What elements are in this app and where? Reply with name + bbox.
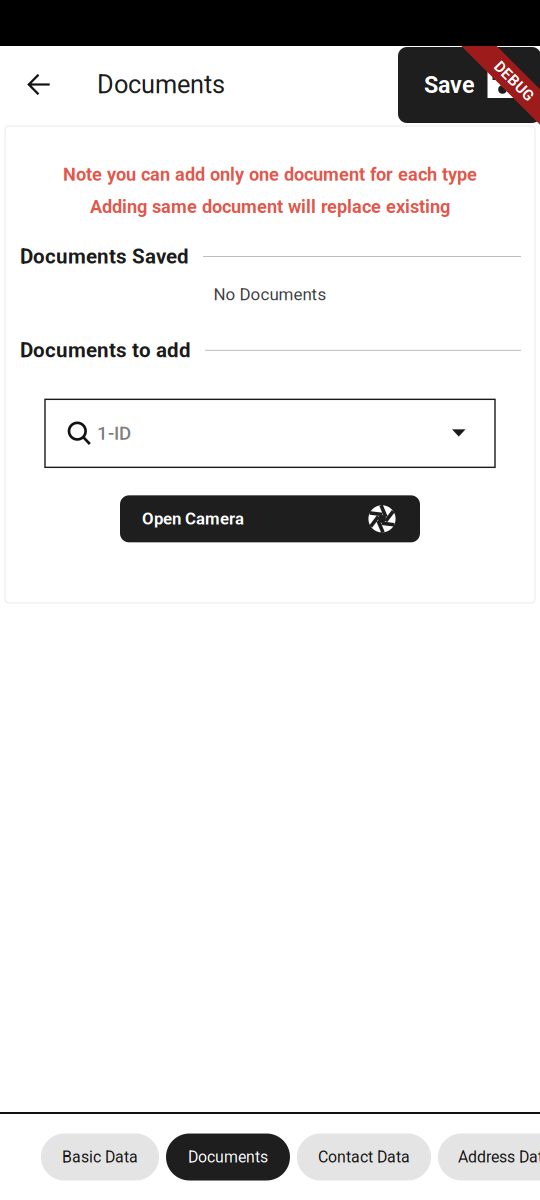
staticText: Contact Data — [318, 1148, 410, 1166]
button[interactable]: Address Data — [438, 1133, 540, 1180]
staticText: Documents to add — [20, 338, 191, 362]
button[interactable]: Contact Data — [297, 1133, 431, 1180]
button[interactable]: Save — [398, 47, 540, 123]
staticText: 1-ID — [97, 422, 131, 444]
button[interactable]: Basic Data — [41, 1133, 159, 1180]
staticText: DEBUG — [489, 72, 538, 90]
staticText: Documents — [97, 70, 225, 99]
staticText: No Documents — [213, 284, 326, 304]
button[interactable]: 1-ID — [45, 399, 495, 467]
staticText: Documents Saved — [20, 244, 189, 269]
staticText: Open Camera — [142, 509, 244, 529]
button[interactable]: Back — [13, 46, 65, 123]
staticText: Save — [424, 71, 475, 99]
staticText: Address Data — [458, 1148, 540, 1166]
staticText: Documents — [188, 1148, 268, 1166]
button[interactable]: Open Camera — [120, 495, 420, 542]
staticText: Basic Data — [62, 1148, 138, 1166]
staticText: Note you can add only one document for e… — [63, 164, 477, 185]
button[interactable]: Documents — [166, 1133, 290, 1180]
staticText: Adding same document will replace existi… — [90, 196, 450, 217]
